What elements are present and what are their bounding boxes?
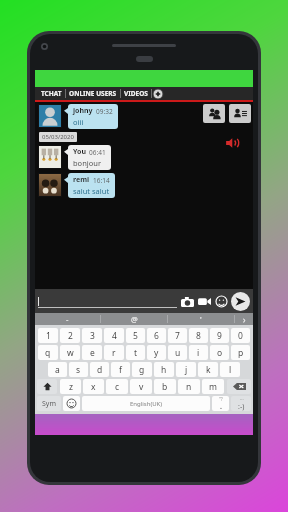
button[interactable]: w (60, 345, 80, 360)
staticText: TCHAT (41, 89, 62, 98)
button[interactable]: TCHAT (38, 87, 65, 100)
button[interactable]: j (176, 362, 196, 377)
button[interactable]: m (202, 379, 224, 394)
button[interactable]: s (69, 362, 88, 377)
staticText: › (243, 314, 246, 325)
button[interactable]: e (82, 345, 102, 360)
button[interactable]: @ (101, 313, 167, 325)
button[interactable]: 6 (147, 328, 166, 343)
button[interactable]: 7 (168, 328, 187, 343)
staticText: a (55, 364, 60, 376)
staticText: y (154, 347, 159, 359)
button[interactable]: u (168, 345, 187, 360)
staticText: @ (131, 314, 138, 324)
staticText: h (161, 364, 167, 376)
button[interactable]: 3 (82, 328, 102, 343)
staticText: bonjour (73, 158, 101, 168)
button[interactable]: johny (68, 104, 118, 129)
button[interactable]: ' (168, 313, 234, 325)
button[interactable]: Sound (223, 134, 241, 152)
button[interactable]: k (198, 362, 218, 377)
staticText: 05/03/2020 (42, 133, 74, 141)
staticText: ' (200, 314, 202, 324)
button[interactable]: 5 (126, 328, 145, 343)
button[interactable]: Emoji (214, 294, 229, 309)
button[interactable]: VIDEOS (121, 87, 151, 100)
button[interactable]: q (38, 345, 58, 360)
staticText: 1 (46, 330, 51, 342)
button[interactable]: Members (203, 104, 225, 123)
button[interactable]: a (48, 362, 67, 377)
staticText: - (66, 314, 69, 324)
button[interactable]: f (111, 362, 130, 377)
button[interactable]: Send (231, 292, 250, 311)
button[interactable]: b (154, 379, 176, 394)
staticText: oiii (73, 117, 84, 127)
staticText: remi (73, 175, 90, 185)
staticText: You (73, 147, 86, 157)
staticText: u (175, 347, 181, 359)
staticText: salut salut (73, 186, 110, 196)
button[interactable]: Period (212, 396, 229, 411)
staticText: 5 (133, 330, 138, 342)
staticText: VIDEOS (124, 89, 148, 98)
button[interactable]: Camera (180, 294, 195, 309)
button[interactable]: d (90, 362, 109, 377)
button[interactable]: n (178, 379, 200, 394)
button[interactable]: remi (68, 173, 115, 198)
button[interactable]: Add tab (152, 88, 164, 100)
staticText: g (139, 364, 145, 376)
button[interactable]: Profile (229, 104, 251, 123)
button[interactable]: More (235, 313, 253, 325)
staticText: 16:14 (93, 176, 110, 185)
button[interactable]: z (60, 379, 81, 394)
staticText: 4 (112, 330, 117, 342)
button[interactable]: v (130, 379, 152, 394)
button[interactable]: l (220, 362, 240, 377)
button[interactable]: y (147, 345, 166, 360)
staticText: 2 (68, 330, 73, 342)
button[interactable]: 8 (189, 328, 208, 343)
button[interactable]: g (132, 362, 152, 377)
staticText: w (67, 347, 74, 359)
staticText: . (220, 402, 222, 411)
staticText: n (186, 381, 192, 393)
button[interactable]: t (126, 345, 145, 360)
button[interactable]: Smiley (231, 396, 251, 411)
staticText: 3 (90, 330, 95, 342)
button[interactable]: i (189, 345, 208, 360)
button[interactable]: c (106, 379, 128, 394)
staticText: v (139, 381, 144, 393)
staticText: ONLINE USERS (69, 89, 117, 98)
staticText: c (115, 381, 120, 393)
button[interactable]: 2 (60, 328, 80, 343)
button[interactable]: 9 (210, 328, 229, 343)
button[interactable]: Backspace (227, 379, 251, 394)
button[interactable]: ONLINE USERS (66, 87, 120, 100)
staticText: 7 (175, 330, 180, 342)
button[interactable]: Shift (37, 379, 57, 394)
button[interactable]: Sym (37, 396, 61, 411)
button[interactable]: Emoji keyboard (63, 396, 80, 411)
staticText: k (206, 364, 211, 376)
button[interactable]: - (35, 313, 100, 325)
button[interactable] (38, 294, 177, 308)
button[interactable]: You (68, 145, 111, 170)
staticText: 8 (196, 330, 201, 342)
button[interactable]: x (83, 379, 104, 394)
button[interactable]: o (210, 345, 229, 360)
button[interactable]: Video (197, 294, 212, 309)
button[interactable]: p (231, 345, 250, 360)
staticText: s (76, 364, 81, 376)
button[interactable]: h (154, 362, 174, 377)
button[interactable]: English(UK) (82, 396, 210, 411)
button[interactable]: 4 (104, 328, 124, 343)
button[interactable]: r (104, 345, 124, 360)
staticText: Sym (42, 399, 56, 409)
staticText: johny (73, 106, 93, 116)
staticText: p (238, 347, 244, 359)
staticText: 9 (217, 330, 222, 342)
staticText: "? (219, 396, 223, 402)
button[interactable]: 1 (38, 328, 58, 343)
button[interactable]: 0 (231, 328, 250, 343)
